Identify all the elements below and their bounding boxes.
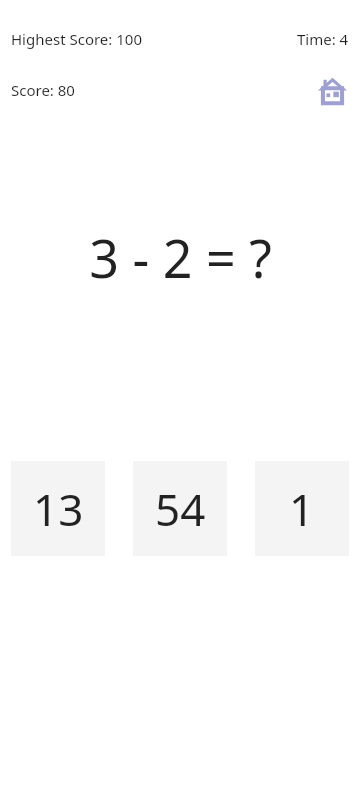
staticText: 1 [289,479,315,539]
staticText: Time: 4 [297,29,349,49]
staticText: 54 [155,479,206,539]
button[interactable]: Home [315,73,349,107]
staticText: Score: 80 [11,80,75,100]
staticText: Highest Score: 100 [11,29,142,49]
staticText: 13 [33,479,84,539]
button[interactable]: 13 [11,461,105,556]
staticText: 3 - 2 = ? [89,222,272,293]
button[interactable]: 1 [255,461,349,556]
button[interactable]: 54 [133,461,227,556]
